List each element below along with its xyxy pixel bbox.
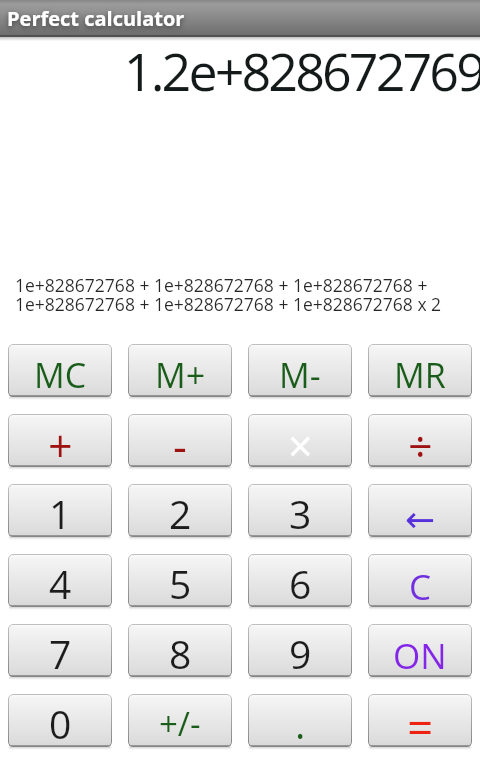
button[interactable]: ÷ — [368, 414, 472, 467]
staticText: 4 — [49, 557, 72, 607]
button[interactable]: 6 — [248, 554, 352, 607]
staticText: 3 — [289, 487, 312, 537]
staticText: +/- — [159, 701, 201, 746]
staticText: + — [48, 416, 73, 467]
button[interactable]: 4 — [8, 554, 112, 607]
staticText: Perfect calculator — [7, 5, 185, 32]
button[interactable]: 8 — [128, 624, 232, 677]
staticText: M- — [279, 352, 321, 397]
button[interactable]: = — [368, 694, 472, 747]
staticText: 5 — [169, 557, 192, 607]
staticText: ÷ — [408, 416, 433, 467]
button[interactable]: 7 — [8, 624, 112, 677]
staticText: × — [288, 416, 313, 467]
staticText: 6 — [289, 557, 312, 607]
button[interactable]: . — [248, 694, 352, 747]
staticText: M+ — [155, 352, 206, 397]
button[interactable]: MR — [368, 344, 472, 397]
button[interactable]: + — [8, 414, 112, 467]
staticText: 8 — [169, 627, 192, 677]
staticText: ← — [405, 499, 436, 537]
staticText: ON — [393, 632, 447, 677]
button[interactable]: 3 — [248, 484, 352, 537]
staticText: MR — [394, 352, 446, 397]
staticText: 9 — [289, 627, 312, 677]
staticText: 1e+828672768 + 1e+828672768 + 1e+8286727… — [15, 273, 442, 316]
button[interactable]: ON — [368, 624, 472, 677]
button[interactable]: 2 — [128, 484, 232, 537]
button[interactable]: - — [128, 414, 232, 467]
staticText: 2 — [169, 487, 192, 537]
button[interactable]: +/- — [128, 694, 232, 747]
staticText: 1.2e+828672769 — [3, 35, 480, 106]
button[interactable]: × — [248, 414, 352, 467]
button[interactable]: MC — [8, 344, 112, 397]
staticText: 0 — [49, 697, 72, 747]
button[interactable]: 1 — [8, 484, 112, 537]
staticText: C — [409, 563, 432, 607]
staticText: MC — [34, 352, 87, 397]
button[interactable]: 9 — [248, 624, 352, 677]
staticText: 1 — [49, 487, 72, 537]
staticText: = — [407, 695, 434, 747]
button[interactable]: M+ — [128, 344, 232, 397]
button[interactable]: ← — [368, 484, 472, 537]
button[interactable]: 5 — [128, 554, 232, 607]
staticText: - — [173, 416, 187, 467]
button[interactable]: C — [368, 554, 472, 607]
button[interactable]: 0 — [8, 694, 112, 747]
staticText: 7 — [49, 627, 72, 677]
button[interactable]: M- — [248, 344, 352, 397]
staticText: . — [295, 697, 306, 747]
